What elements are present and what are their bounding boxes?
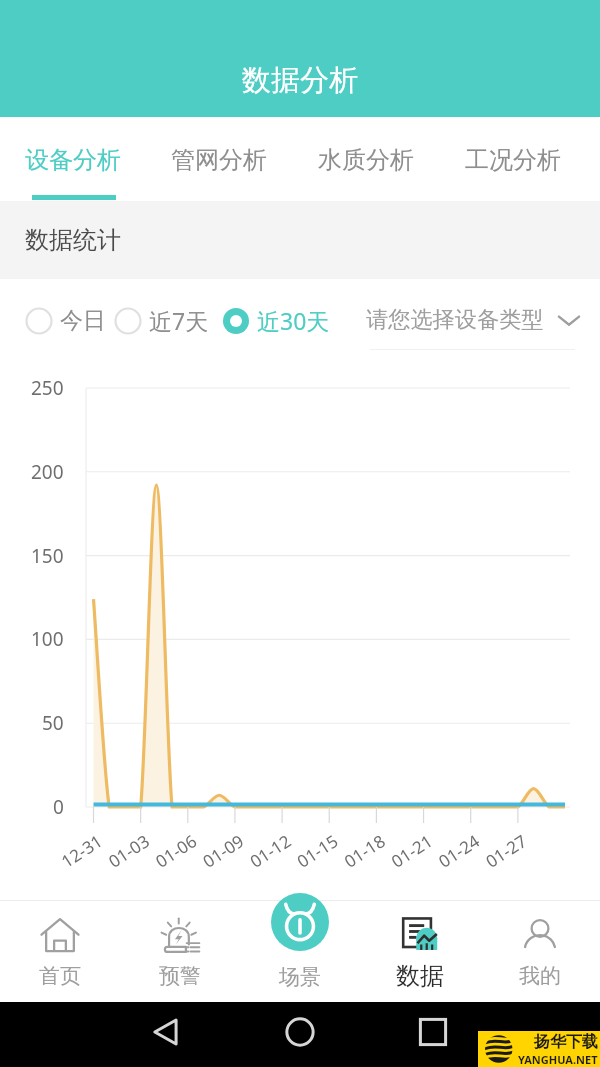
button[interactable]: 设备分析 [0,117,146,201]
button[interactable]: 水质分析 [292,117,439,201]
button[interactable]: Recents [413,1012,453,1052]
staticText: 管网分析 [171,145,267,175]
staticText: 请您选择设备类型 [366,306,544,334]
button[interactable]: Home [280,1012,320,1052]
button[interactable]: 管网分析 [146,117,292,201]
staticText: 近7天 [149,305,209,336]
staticText: 扬华下载 [534,1032,598,1052]
staticText: 设备分析 [25,145,121,175]
button[interactable]: 数据 [360,900,480,1002]
staticText: 预警 [159,963,201,989]
staticText: YANGHUA.NET [518,1052,598,1067]
button[interactable]: 今日 [25,306,106,335]
staticText: 今日 [60,306,106,335]
button[interactable]: 场景 [271,893,329,951]
staticText: 数据分析 [242,62,358,99]
button[interactable]: 请您选择设备类型 [366,306,600,334]
button[interactable]: Back [146,1012,186,1052]
button[interactable]: 近7天 [114,305,209,336]
staticText: 工况分析 [465,145,561,175]
staticText: 我的 [519,963,561,989]
staticText: 场景 [279,964,321,990]
button[interactable]: 预警 [120,900,240,1002]
button[interactable]: 近30天 [222,305,330,336]
button[interactable]: 首页 [0,900,120,1002]
staticText: 水质分析 [318,145,414,175]
button[interactable]: 工况分析 [439,117,586,201]
button[interactable]: 我的 [480,900,600,1002]
staticText: 首页 [39,963,81,989]
staticText: 数据 [396,961,444,991]
staticText: 数据统计 [25,225,121,255]
staticText: 近30天 [257,305,330,336]
